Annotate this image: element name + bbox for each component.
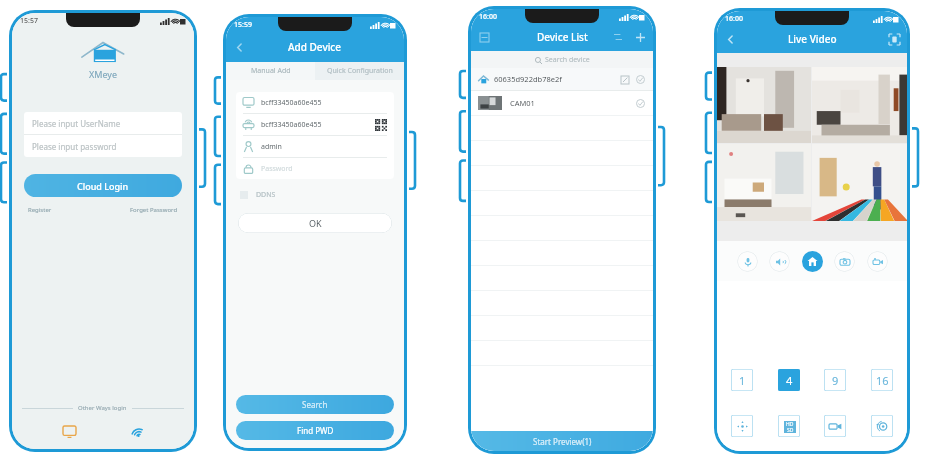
button[interactable]: Stream quality (778, 415, 800, 437)
button[interactable]: Edit device (619, 74, 630, 85)
button[interactable] (717, 144, 811, 221)
button[interactable]: Back (722, 31, 738, 47)
button[interactable]: Manual Add (226, 62, 315, 80)
button[interactable]: Snapshot (834, 251, 855, 272)
staticText: Manual Add (251, 66, 291, 76)
button[interactable] (812, 144, 907, 221)
button[interactable]: DDNS (240, 187, 276, 203)
staticText: Start Preview(1) (533, 436, 592, 447)
button[interactable]: PTZ (731, 415, 753, 437)
staticText: CAM01 (510, 98, 535, 108)
button[interactable] (717, 67, 811, 143)
button[interactable] (812, 67, 907, 143)
button[interactable]: Scan QR code (375, 119, 387, 131)
staticText: 9 (832, 373, 839, 388)
button[interactable]: Microphone (737, 251, 758, 272)
button[interactable]: Local login (59, 421, 79, 441)
staticText: 15:57 (20, 16, 38, 26)
button[interactable]: Add device (633, 30, 647, 44)
button[interactable]: Record (867, 251, 888, 272)
button[interactable]: 1 (731, 369, 753, 391)
button[interactable]: 9 (824, 369, 846, 391)
button[interactable]: Start Preview(1) (471, 431, 653, 451)
button[interactable]: Playback (871, 415, 893, 437)
button[interactable]: Select (635, 98, 646, 109)
button[interactable]: admin (243, 136, 387, 157)
button[interactable]: Menu (477, 30, 491, 44)
button[interactable]: Sort (611, 30, 625, 44)
staticText: 4 (786, 373, 793, 388)
button[interactable]: Please input UserName (24, 112, 182, 134)
button[interactable]: Fullscreen (887, 32, 901, 46)
staticText: 15:59 (234, 20, 252, 30)
button[interactable]: Please input password (24, 135, 182, 157)
staticText: Cloud Login (77, 180, 129, 192)
staticText: Please input UserName (32, 118, 121, 129)
staticText: Password (261, 164, 293, 174)
staticText: 16:00 (479, 12, 497, 22)
staticText: SD (787, 427, 794, 433)
staticText: Forget Password (130, 206, 178, 214)
button[interactable]: 16 (871, 369, 893, 391)
staticText: Device List (537, 30, 588, 44)
staticText: Search device (545, 55, 590, 65)
staticText: Search (302, 399, 328, 410)
staticText: Other Ways login (78, 404, 127, 412)
staticText: 60635d922db78e2f (494, 74, 562, 84)
staticText: bcff33450a60e455 (261, 120, 322, 130)
button[interactable]: 4 (778, 369, 800, 391)
button[interactable]: Forget Password (130, 206, 178, 214)
button[interactable]: CAM01 (478, 91, 646, 115)
staticText: OK (309, 217, 322, 229)
button[interactable]: Select (635, 74, 646, 85)
staticText: XMeye (89, 68, 117, 80)
button[interactable]: Quick Configuration (315, 62, 404, 80)
staticText: admin (261, 142, 282, 152)
button[interactable]: bcff33450a60e455 (243, 92, 387, 113)
button[interactable]: Speaker (769, 251, 790, 272)
staticText: 16 (876, 373, 889, 388)
button[interactable]: Search (236, 395, 394, 414)
button[interactable]: Video (824, 415, 846, 437)
button[interactable]: bcff33450a60e455 (243, 114, 387, 135)
staticText: 1 (739, 373, 746, 388)
staticText: DDNS (256, 190, 276, 200)
staticText: HD (786, 421, 794, 427)
staticText: Register (28, 206, 52, 214)
button[interactable]: Register (28, 206, 52, 214)
staticText: Please input password (32, 141, 117, 152)
button[interactable]: Password (243, 158, 387, 179)
button[interactable]: Cloud Login (24, 174, 182, 197)
button[interactable]: Home (802, 251, 823, 272)
button[interactable]: Back (230, 38, 248, 56)
button[interactable]: 60635d922db78e2f (478, 68, 646, 90)
button[interactable]: Wi-Fi login (127, 421, 147, 441)
staticText: Quick Configuration (327, 66, 393, 76)
button[interactable]: Find PWD (236, 421, 394, 440)
staticText: Find PWD (297, 425, 334, 436)
staticText: 16:00 (725, 14, 743, 24)
staticText: bcff33450a60e455 (261, 98, 322, 108)
button[interactable]: Search device (471, 51, 653, 68)
staticText: Live Video (788, 32, 837, 46)
staticText: Add Device (288, 40, 342, 54)
button[interactable]: OK (238, 213, 392, 233)
